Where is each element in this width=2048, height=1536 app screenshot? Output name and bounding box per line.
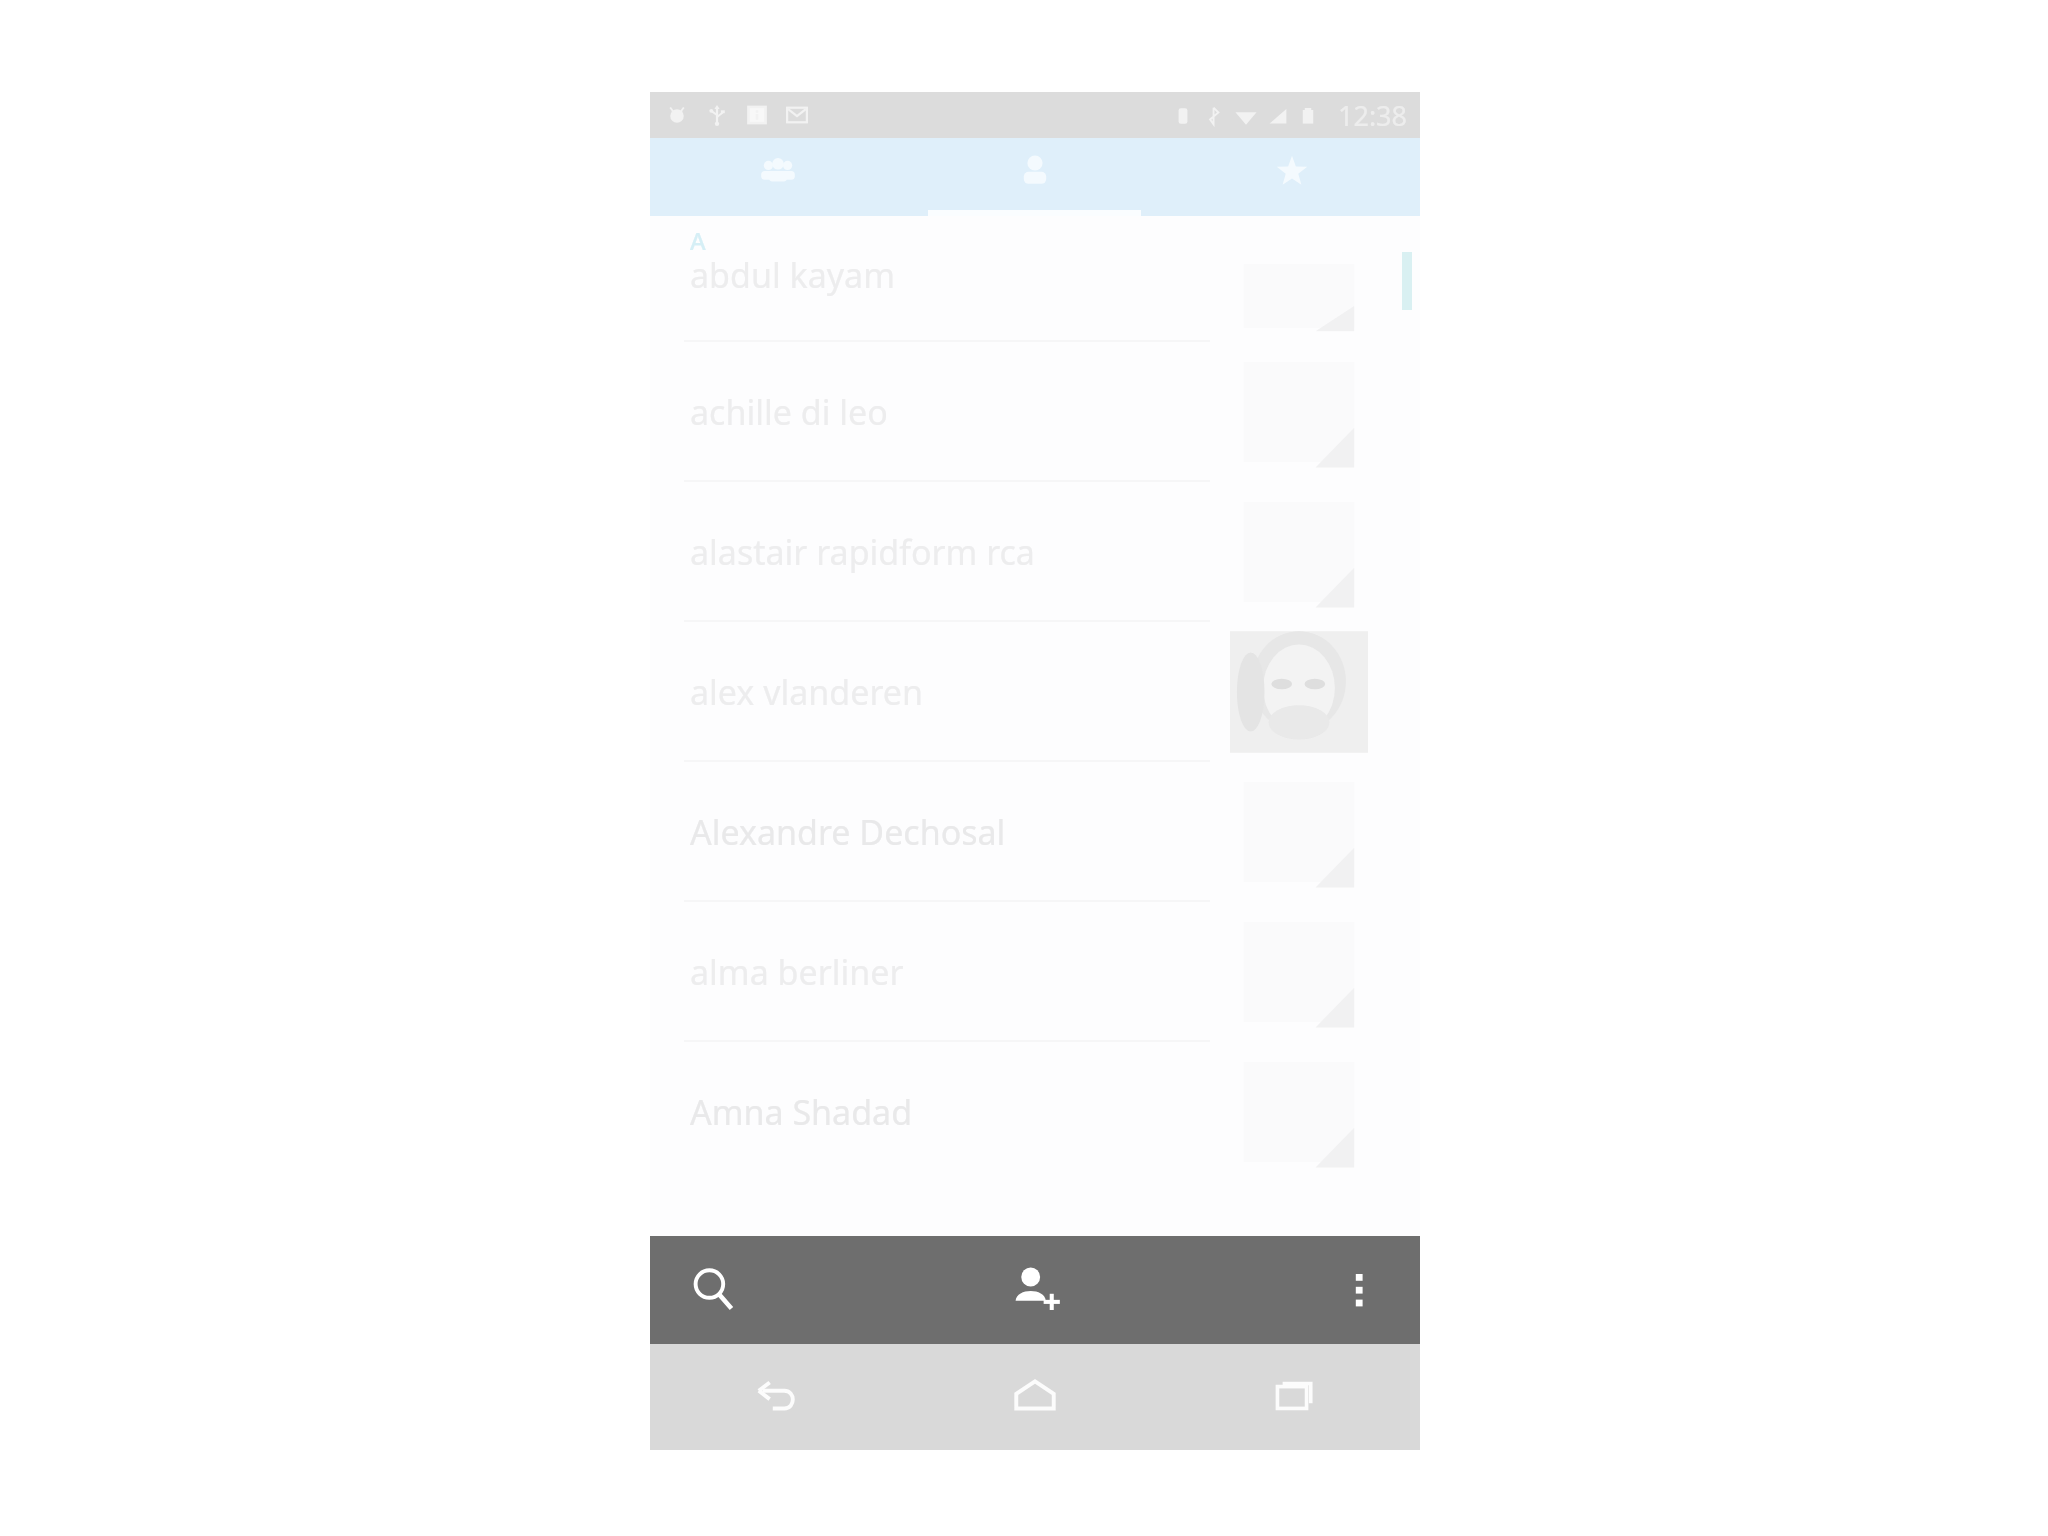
staticText: 12:38	[1338, 97, 1408, 134]
staticText: alex vlanderen	[690, 669, 923, 715]
button[interactable]: Recents	[1163, 1344, 1420, 1450]
button[interactable]: Home	[906, 1344, 1163, 1450]
button[interactable]: Alexandre Dechosal	[650, 762, 1420, 902]
button[interactable]: Add contact	[987, 1242, 1083, 1338]
staticText: Alexandre Dechosal	[690, 809, 1006, 855]
staticText: achille di leo	[690, 389, 888, 435]
staticText: Amna Shadad	[690, 1089, 913, 1135]
staticText: A	[690, 224, 706, 250]
button[interactable]: Back	[650, 1344, 906, 1450]
button[interactable]: All contacts	[906, 138, 1163, 216]
staticText: abdul kayam	[690, 252, 895, 298]
button[interactable]: alex vlanderen	[650, 622, 1420, 762]
button[interactable]: Search	[672, 1248, 756, 1332]
button[interactable]: Groups	[650, 138, 906, 216]
button[interactable]: abdul kayam	[650, 250, 1420, 342]
staticText: alastair rapidform rca	[690, 529, 1035, 575]
button[interactable]: More options	[1322, 1253, 1396, 1327]
staticText: alma berliner	[690, 949, 904, 995]
